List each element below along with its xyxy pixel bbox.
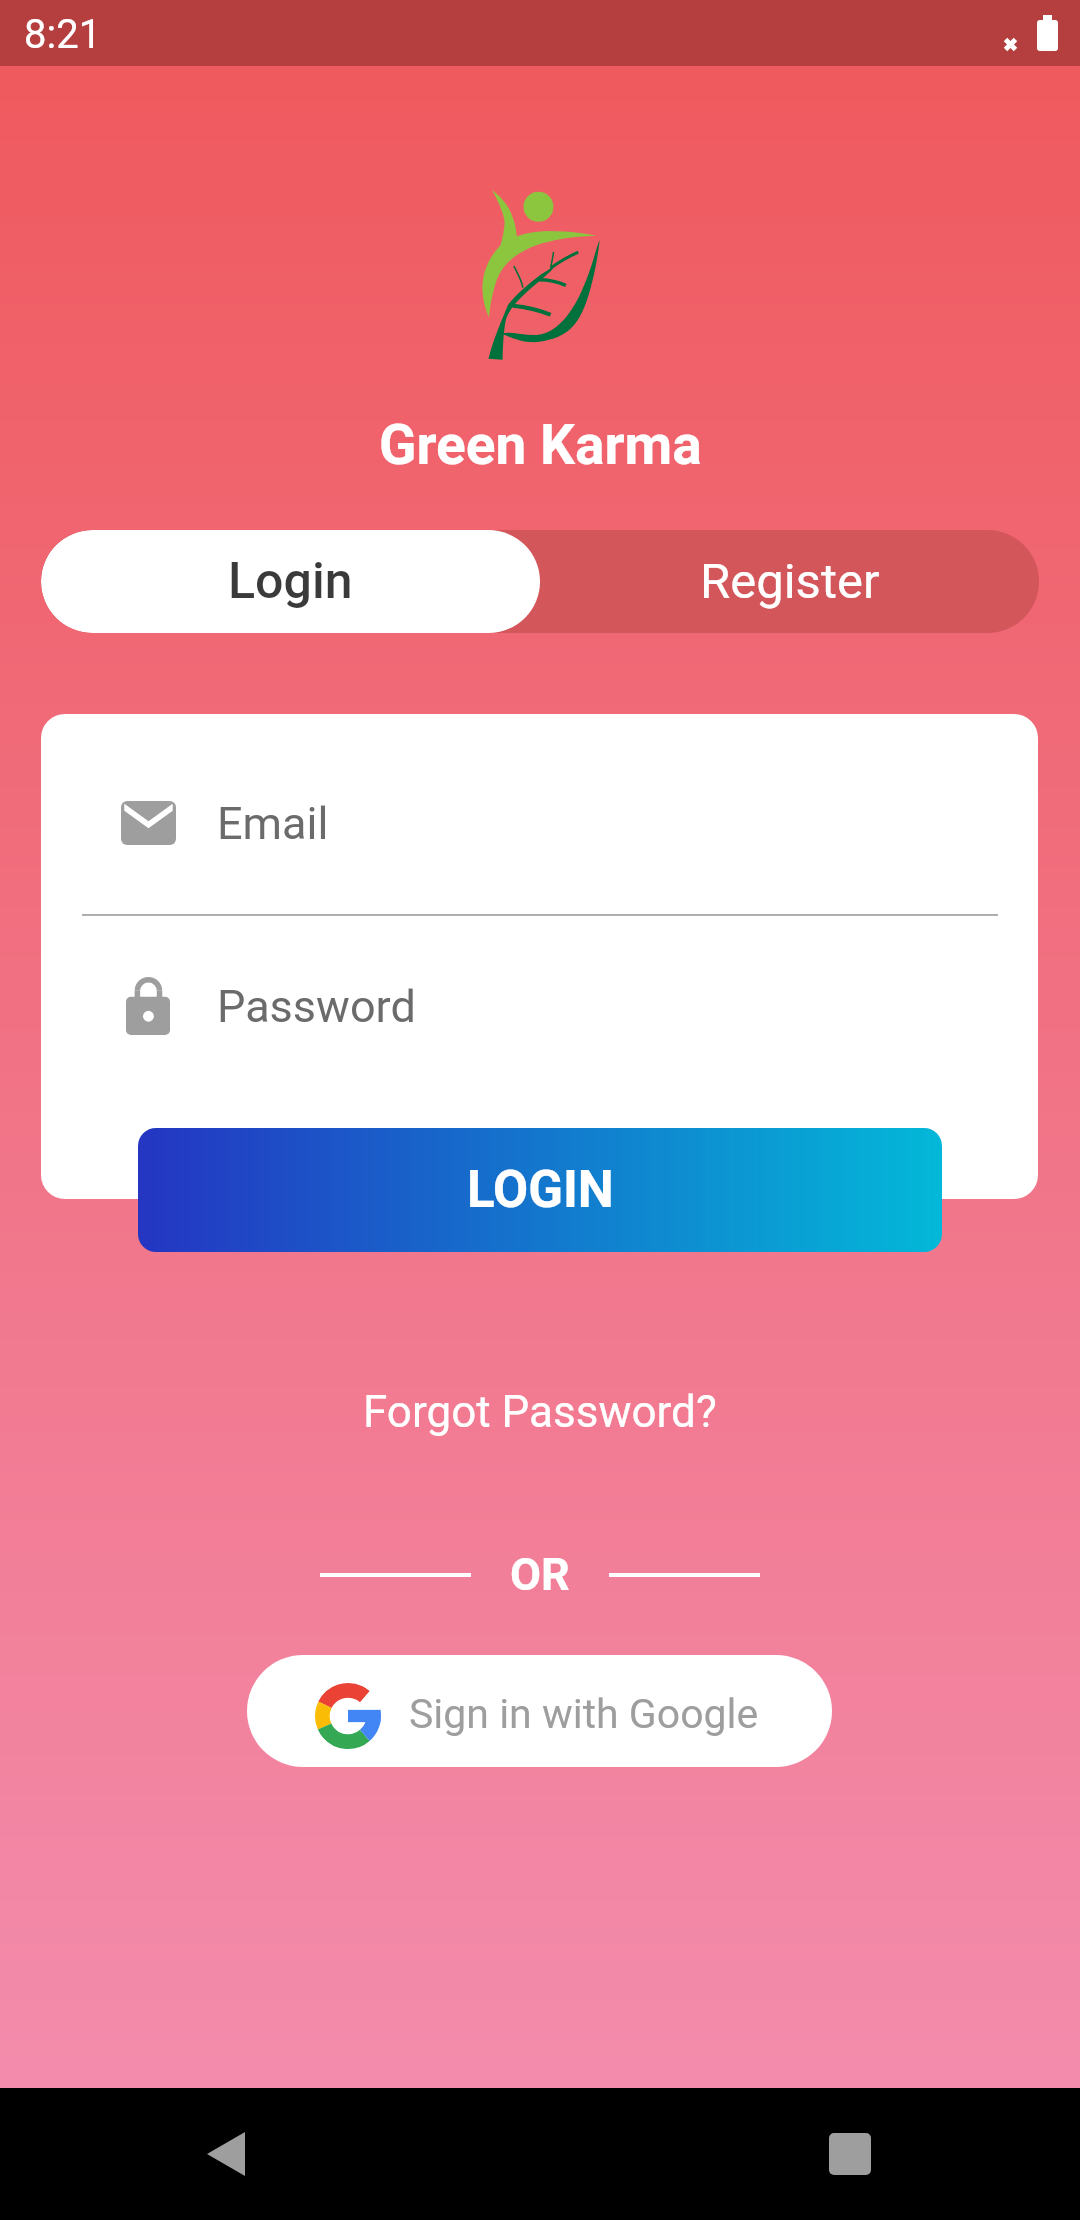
button[interactable]: Recent apps — [820, 2124, 880, 2184]
staticText: Login — [228, 552, 353, 611]
staticText: Green Karma — [379, 413, 702, 477]
button[interactable]: Forgot Password? — [345, 1378, 735, 1446]
other: No signal — [1004, 38, 1017, 51]
staticText: Register — [700, 553, 880, 610]
button[interactable]: Sign in with Google — [247, 1655, 832, 1767]
button[interactable]: Back — [196, 2122, 256, 2182]
staticText: OR — [510, 1548, 570, 1601]
button[interactable]: Password — [101, 951, 981, 1061]
button[interactable]: Email — [101, 768, 981, 878]
other: Battery full — [1037, 15, 1059, 51]
staticText: Sign in with Google — [409, 1690, 759, 1738]
staticText: Password — [217, 980, 416, 1033]
button[interactable]: Register — [540, 530, 1039, 633]
staticText: Forgot Password? — [363, 1386, 717, 1438]
button[interactable]: Login — [41, 530, 540, 633]
button[interactable]: LOGIN — [138, 1128, 942, 1252]
staticText: Email — [217, 797, 329, 850]
staticText: 8:21 — [24, 11, 102, 58]
staticText: LOGIN — [467, 1160, 614, 1220]
